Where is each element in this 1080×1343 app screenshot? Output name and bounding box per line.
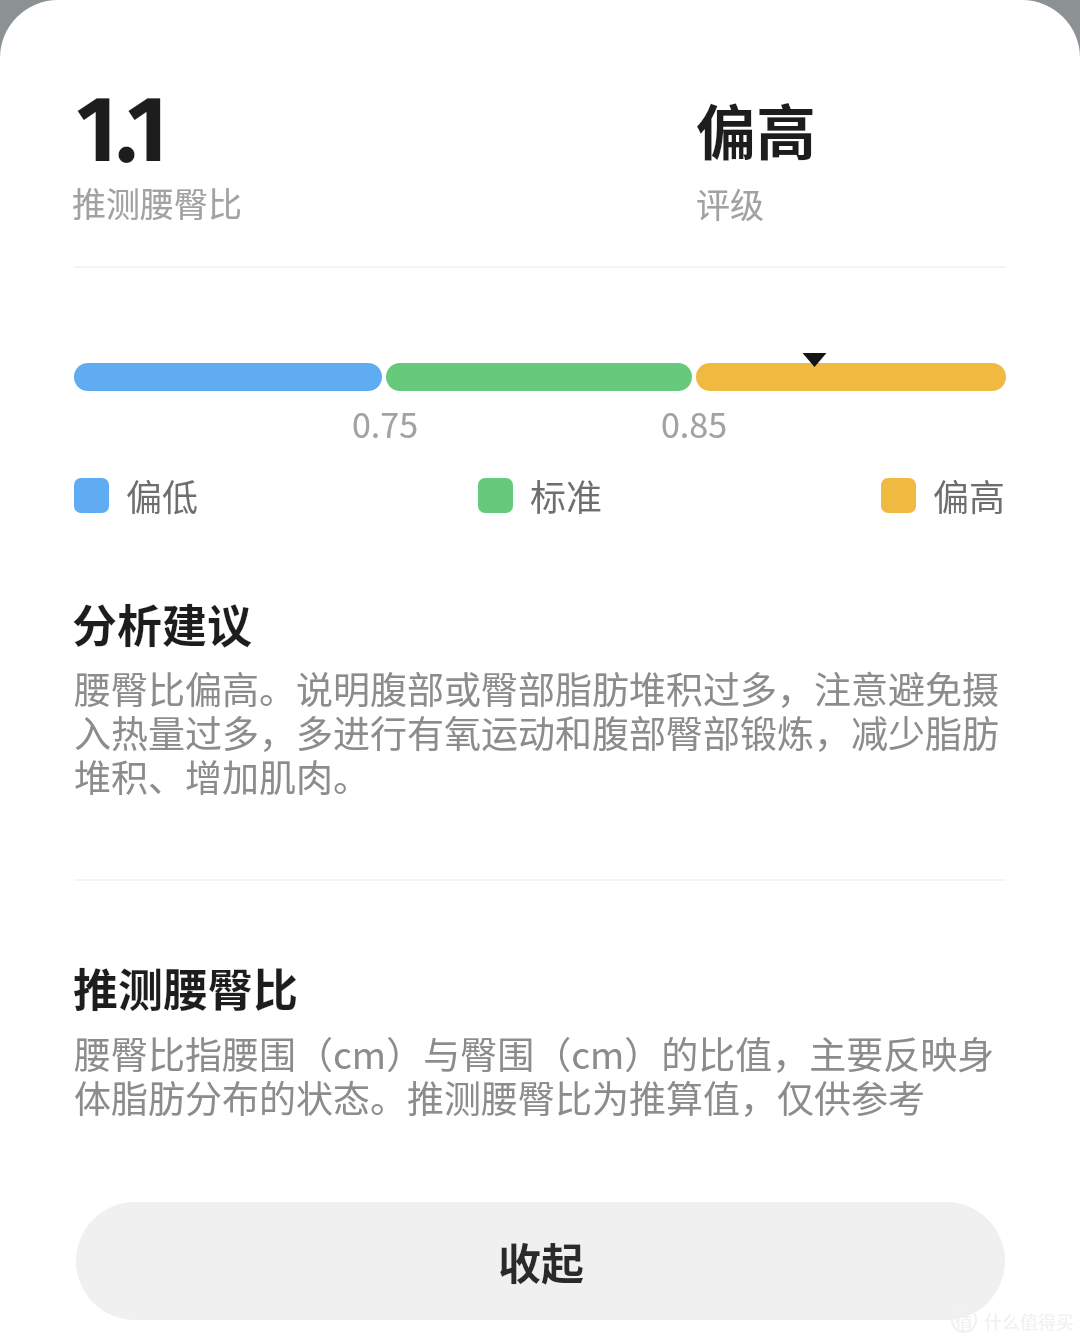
staticText: 0.75 (320, 399, 450, 448)
staticText: 标准 (530, 469, 603, 521)
other: Logo (951, 1307, 977, 1333)
staticText: 什么值得买 (984, 1308, 1074, 1334)
staticText: 腰臀比指腰围（cm）与臀围（cm）的比值，主要反映身体脂肪分布的状态。推测腰臀比… (74, 1026, 1008, 1124)
staticText: 分析建议 (72, 591, 253, 656)
button[interactable]: 收起 (76, 1202, 1005, 1320)
staticText: 收起 (498, 1230, 584, 1292)
staticText: 腰臀比偏高。说明腹部或臀部脂肪堆积过多，注意避免摄入热量过多，多进行有氧运动和腹… (74, 661, 1008, 803)
staticText: 1.1 (77, 75, 167, 185)
staticText: 偏高 (933, 469, 1006, 521)
staticText: 评级 (696, 179, 764, 228)
staticText: 0.85 (629, 399, 759, 448)
staticText: 推测腰臀比 (72, 178, 242, 227)
staticText: 偏低 (126, 469, 199, 521)
staticText: 偏高 (696, 85, 816, 172)
staticText: 推测腰臀比 (73, 955, 299, 1020)
staticText: 值 (955, 1309, 973, 1335)
